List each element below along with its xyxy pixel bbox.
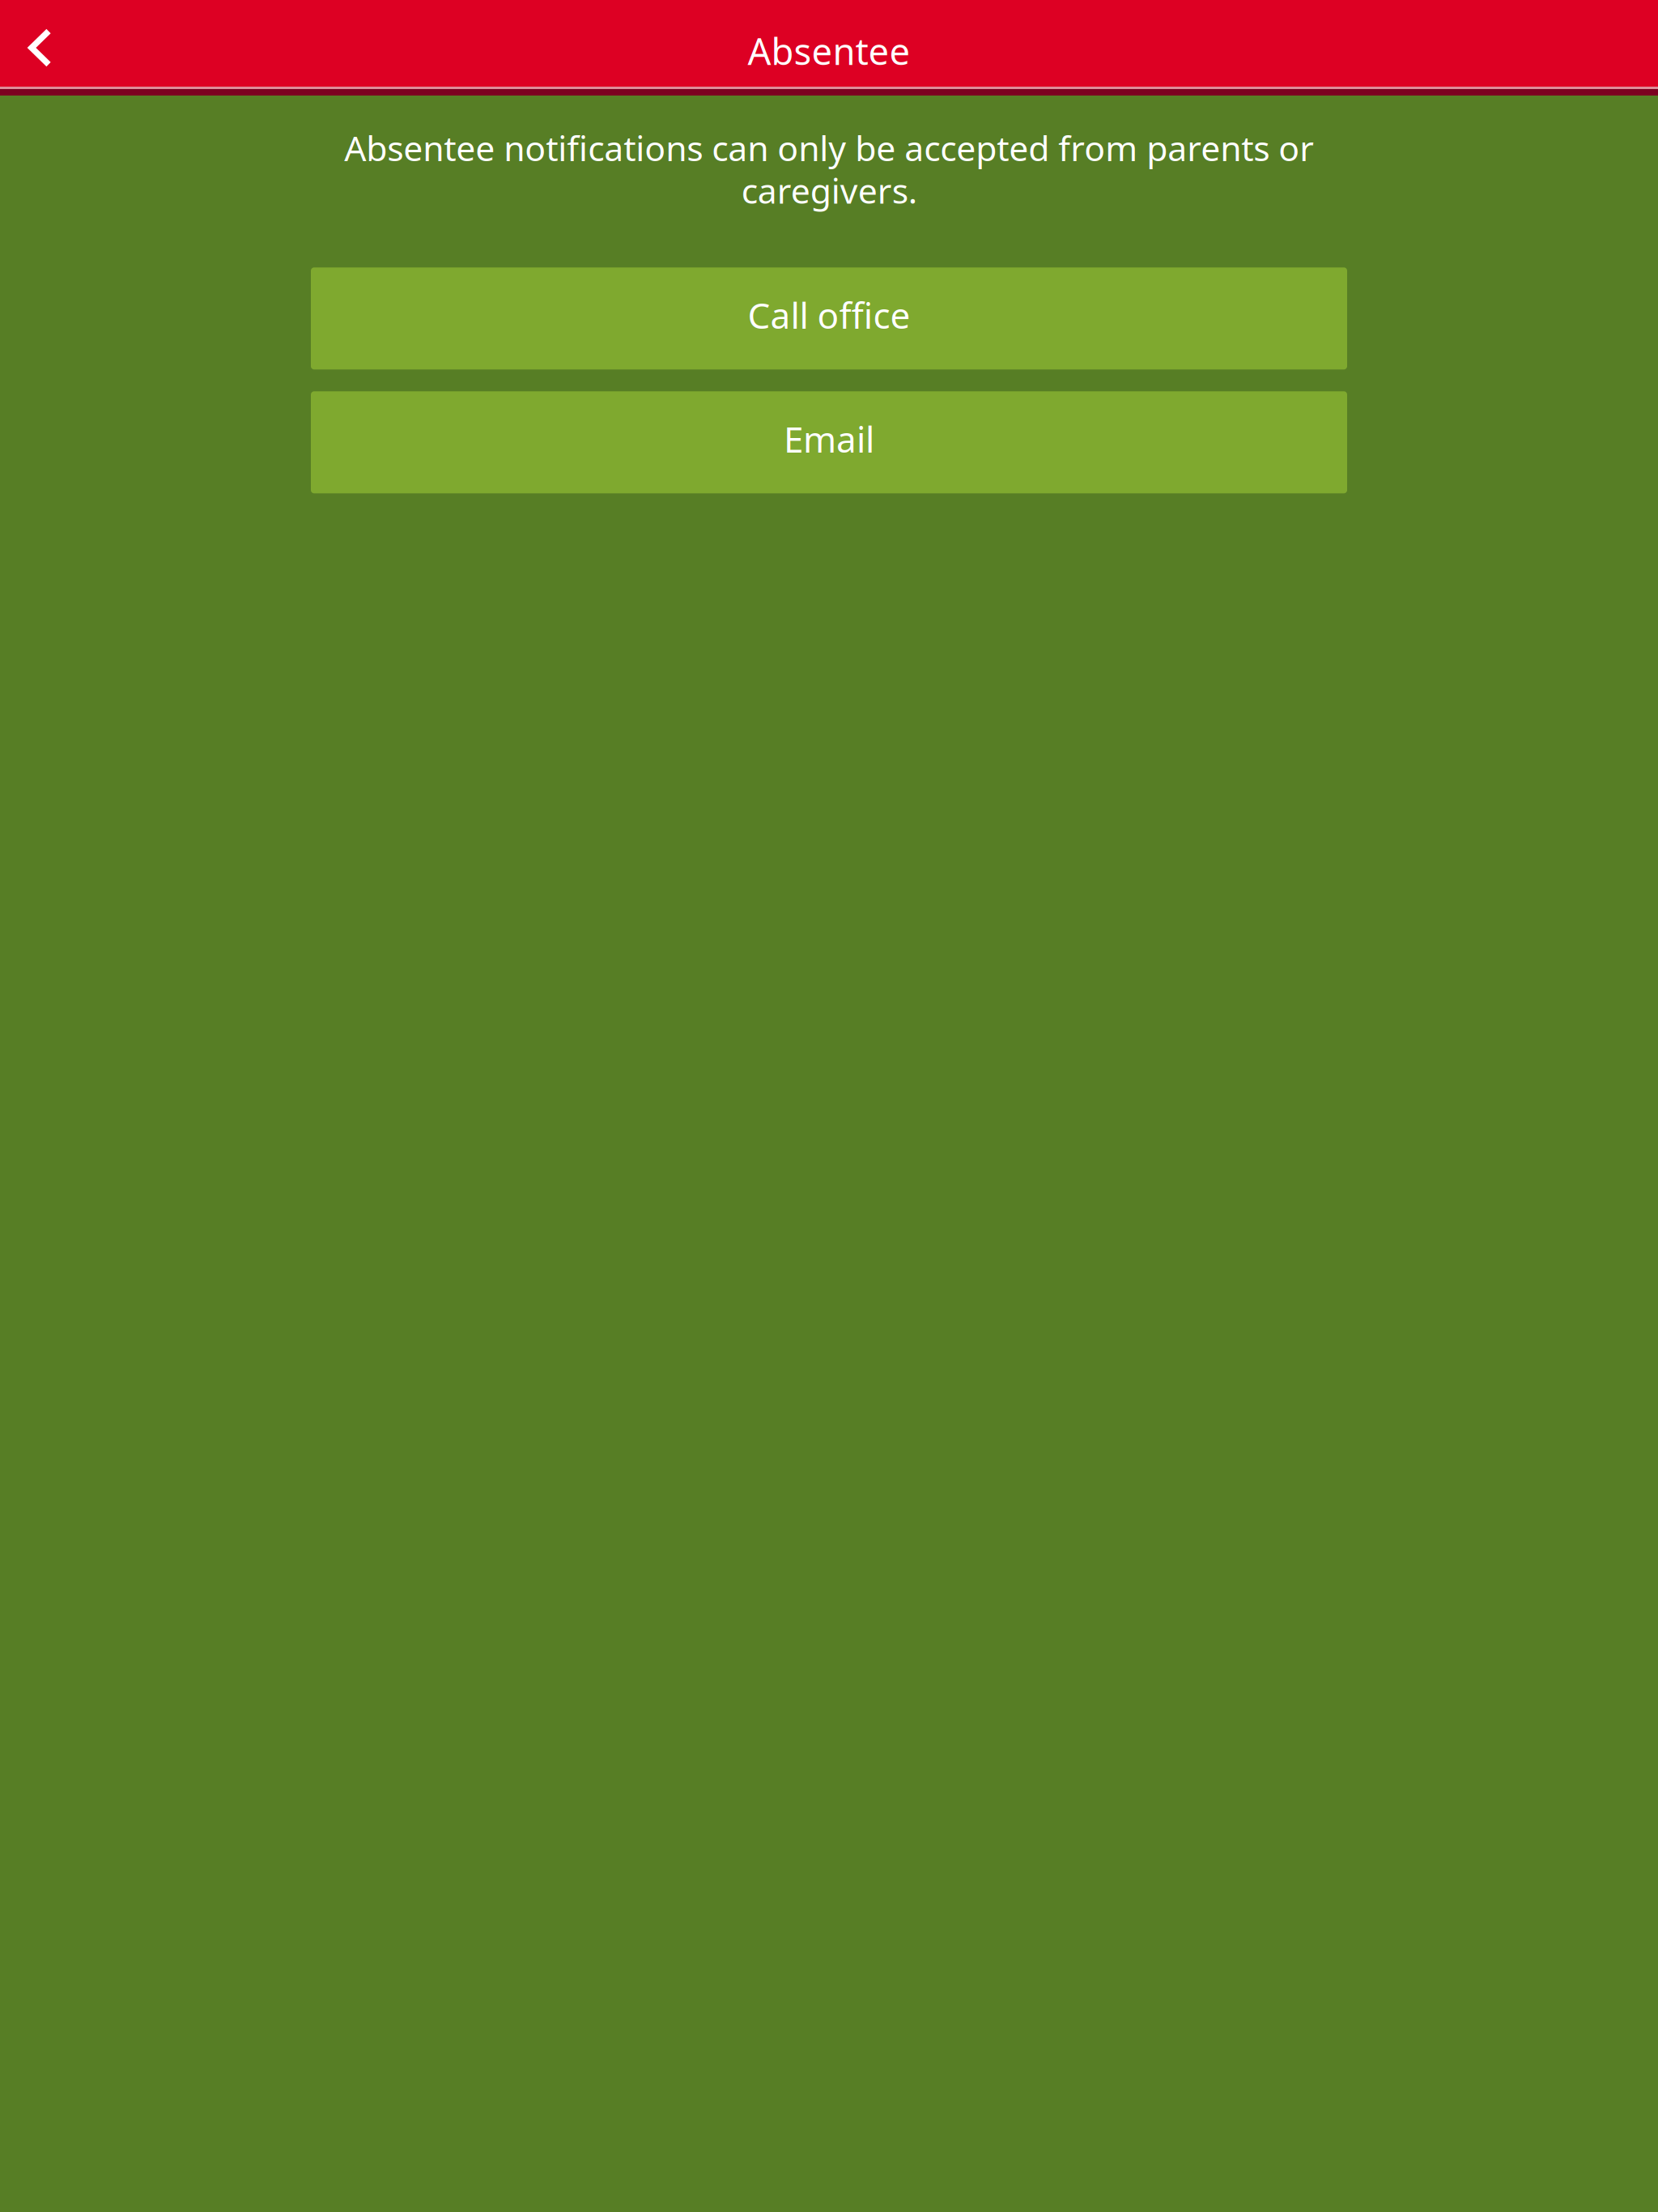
staticText: Absentee notifications can only be accep… — [344, 125, 1314, 213]
staticText: Email — [784, 415, 874, 462]
button[interactable]: Call office — [311, 267, 1347, 369]
staticText: Call office — [748, 291, 910, 338]
button[interactable]: Email — [311, 391, 1347, 493]
button[interactable]: Back — [0, 3, 71, 84]
staticText: Absentee — [748, 26, 910, 75]
